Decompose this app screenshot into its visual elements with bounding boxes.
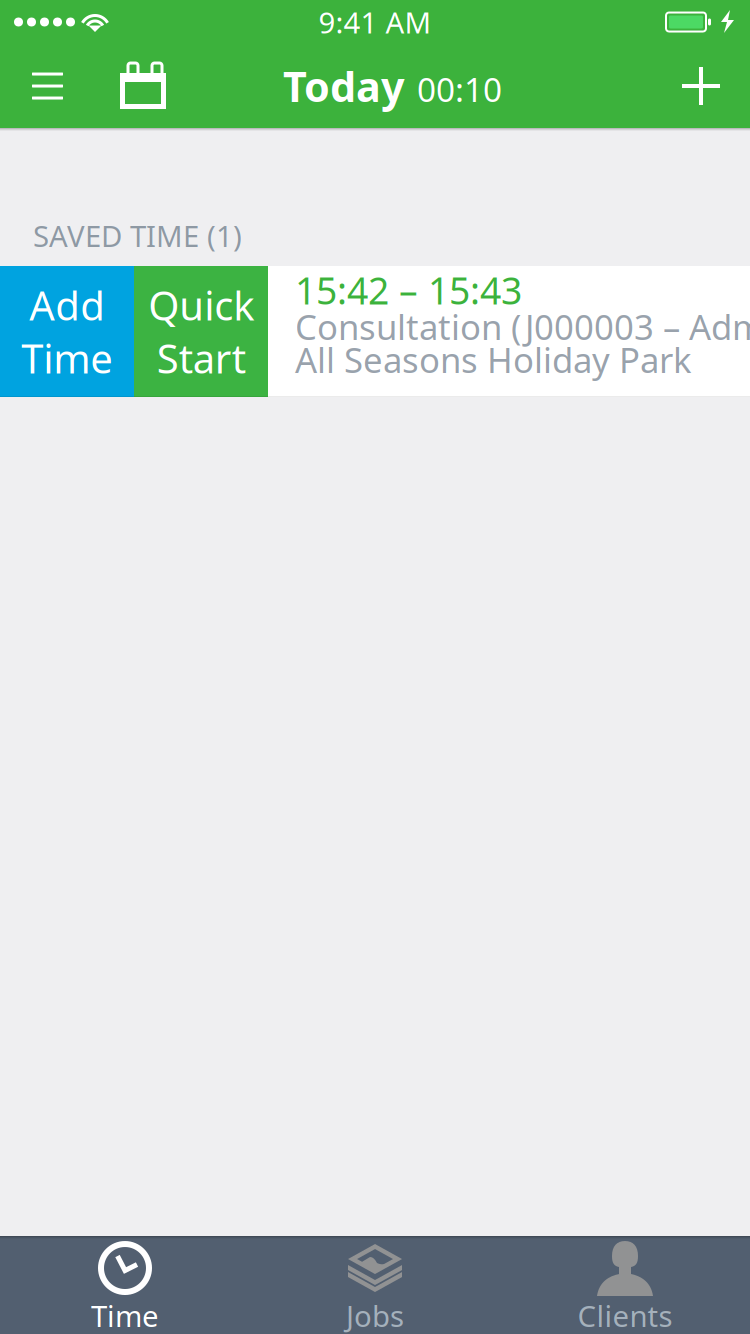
staticText: Jobs <box>346 1296 404 1334</box>
button[interactable]: 15:42 – 15:43 <box>268 266 750 397</box>
button[interactable]: Jobs <box>250 1236 500 1334</box>
button[interactable]: Time <box>0 1236 250 1334</box>
staticText: Add Time <box>21 278 113 385</box>
button[interactable]: Clients <box>500 1236 750 1334</box>
button[interactable]: Quick Start <box>134 266 268 397</box>
staticText: Consultation (J000003 – Administrator <box>295 303 750 349</box>
button[interactable]: Menu <box>0 44 95 128</box>
staticText: 9:41 AM <box>318 2 431 41</box>
staticText: 00:10 <box>417 67 502 111</box>
staticText: 15:42 – 15:43 <box>295 265 522 315</box>
staticText: Quick Start <box>148 278 254 385</box>
staticText: All Seasons Holiday Park <box>295 336 692 382</box>
staticText: Today <box>283 59 405 113</box>
staticText: Clients <box>577 1296 672 1334</box>
button[interactable]: Add Time <box>0 266 134 397</box>
button[interactable]: Calendar <box>95 44 191 128</box>
staticText: Time <box>91 1296 159 1334</box>
staticText: SAVED TIME (1) <box>33 216 242 255</box>
button[interactable]: Add <box>652 44 750 128</box>
